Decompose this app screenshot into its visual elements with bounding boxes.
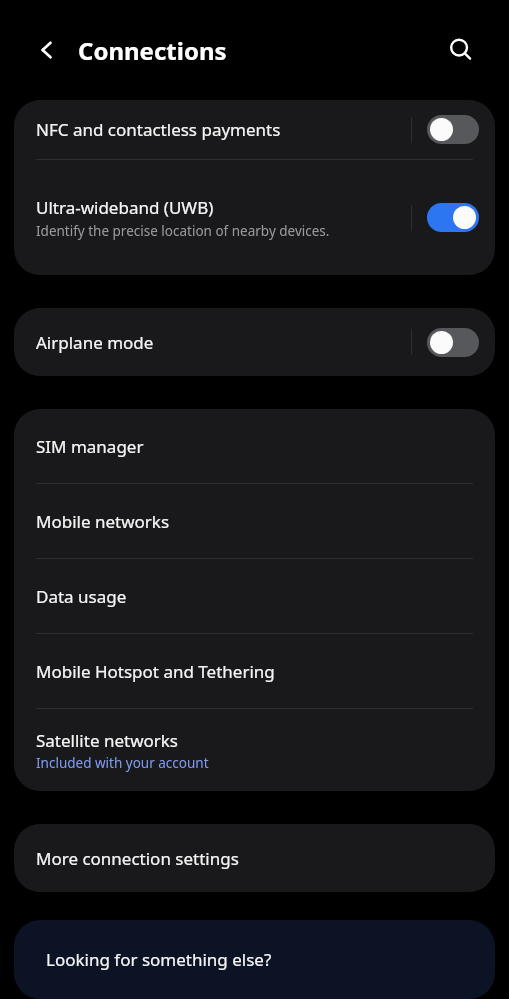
button[interactable]: Toggle on <box>427 203 479 232</box>
button[interactable]: Looking for something else? <box>14 920 495 999</box>
button[interactable]: More connection settings <box>14 824 495 892</box>
staticText: Airplane mode <box>36 331 154 354</box>
button[interactable]: SIM manager <box>14 409 495 483</box>
staticText: Included with your account <box>36 754 209 772</box>
staticText: Mobile networks <box>36 510 170 533</box>
staticText: Connections <box>78 34 227 67</box>
staticText: Data usage <box>36 585 127 608</box>
button[interactable]: NFC and contactless payments <box>14 100 495 159</box>
button[interactable]: Toggle off <box>427 328 479 357</box>
staticText: Mobile Hotspot and Tethering <box>36 660 275 683</box>
staticText: Satellite networks <box>36 729 179 752</box>
button[interactable]: Mobile Hotspot and Tethering <box>14 634 495 708</box>
staticText: NFC and contactless payments <box>36 118 281 141</box>
button[interactable]: Back <box>27 30 67 70</box>
button[interactable]: Satellite networks <box>14 709 495 791</box>
button[interactable]: Toggle off <box>427 115 479 144</box>
button[interactable]: Ultra-wideband (UWB) <box>14 160 495 275</box>
button[interactable]: Mobile networks <box>14 484 495 558</box>
staticText: Identify the precise location of nearby … <box>36 222 330 240</box>
button[interactable]: Airplane mode <box>14 308 495 376</box>
button[interactable]: Data usage <box>14 559 495 633</box>
button[interactable]: Search <box>441 30 481 70</box>
staticText: Ultra-wideband (UWB) <box>36 196 214 219</box>
staticText: Looking for something else? <box>46 948 272 971</box>
staticText: More connection settings <box>36 847 239 870</box>
staticText: SIM manager <box>36 435 144 458</box>
